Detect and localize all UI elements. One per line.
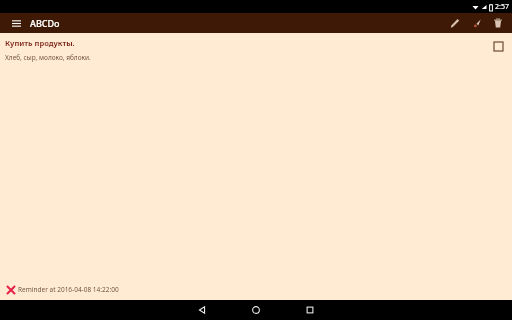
button[interactable]: Mark done	[490, 38, 506, 54]
button[interactable]: Edit	[445, 14, 463, 32]
button[interactable]: Back	[175, 300, 229, 320]
staticText: ABCDo	[30, 17, 60, 29]
staticText: Reminder at 2016-04-08 14:22:00	[18, 285, 119, 294]
staticText: Купить продукты.	[5, 38, 75, 48]
button[interactable]: Delete	[489, 14, 507, 32]
button[interactable]: Open navigation menu	[8, 15, 24, 31]
button[interactable]: Recent apps	[283, 300, 337, 320]
button[interactable]: Купить продукты.	[0, 37, 512, 64]
other: Cancel reminder	[4, 283, 17, 296]
staticText: 2:57	[495, 2, 509, 12]
button[interactable]: Color	[467, 14, 485, 32]
staticText: Хлеб, сыр, молоко, яблоки.	[5, 53, 91, 62]
button[interactable]: Cancel reminder	[0, 281, 512, 300]
button[interactable]: Home	[229, 300, 283, 320]
